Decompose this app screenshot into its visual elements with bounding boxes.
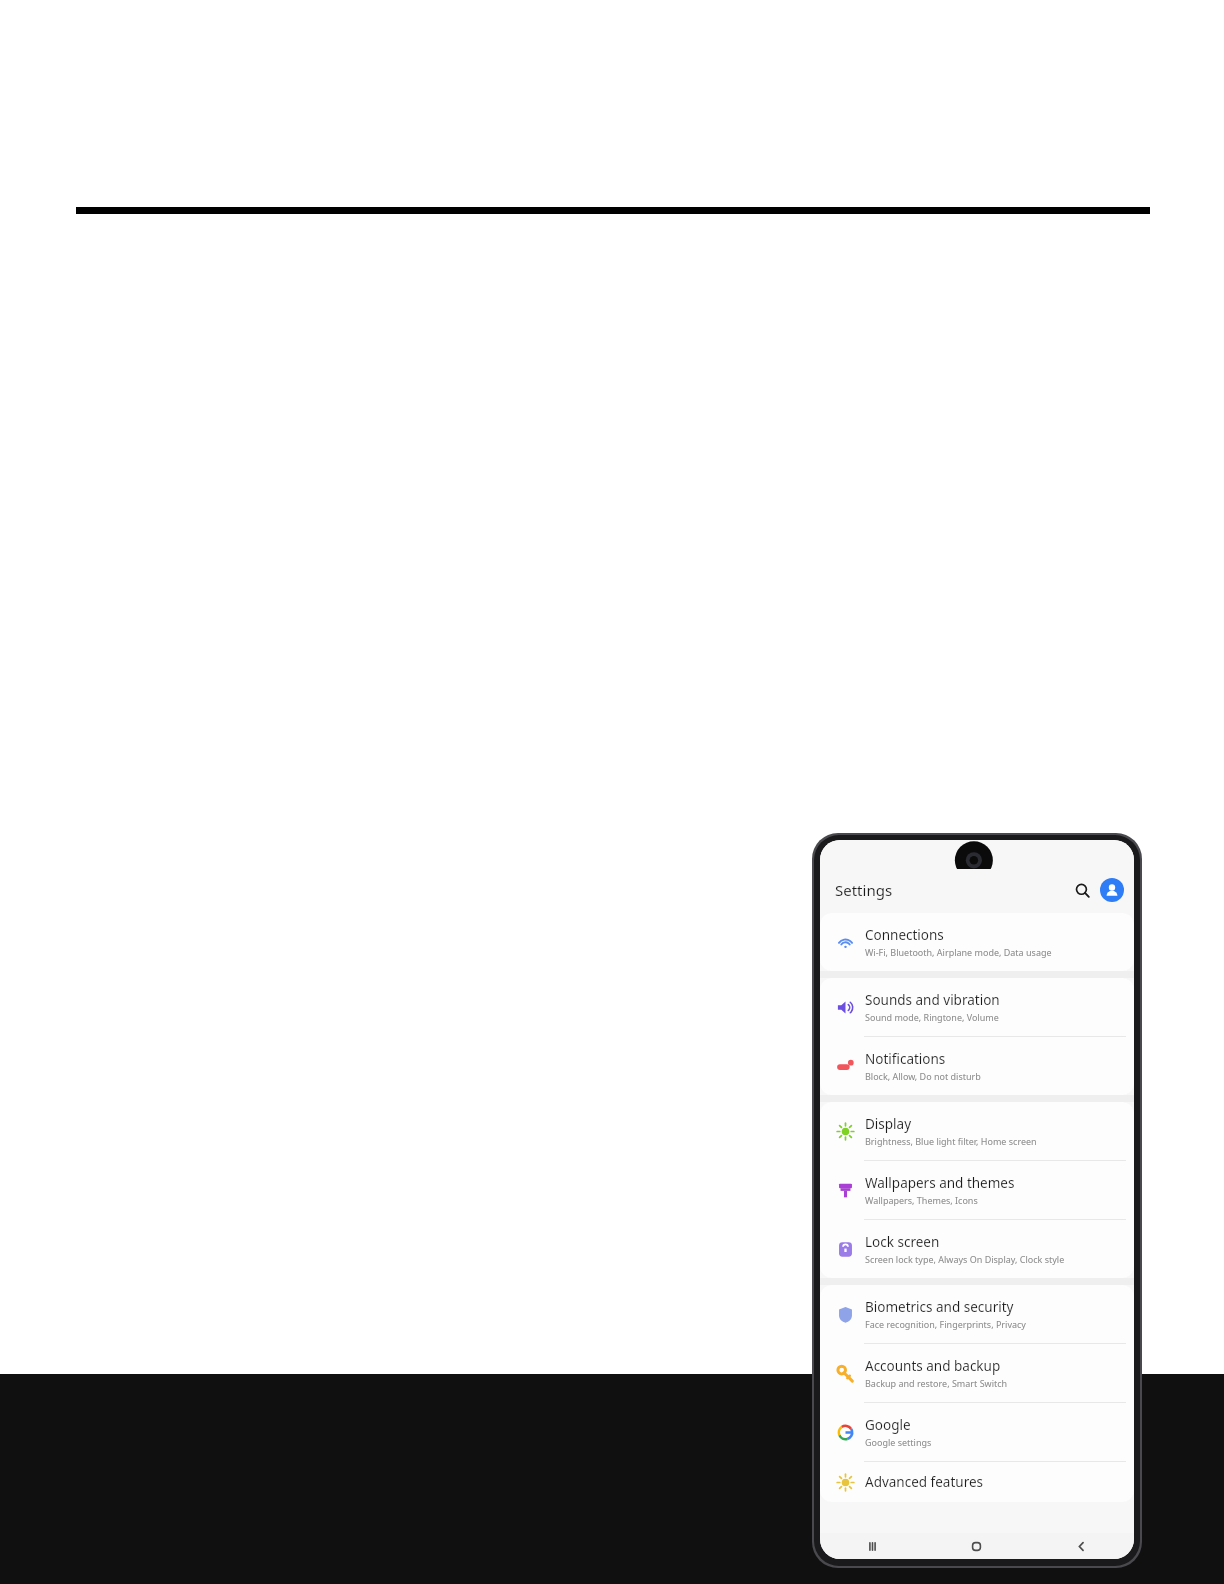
button[interactable]: Advanced features [820,1462,1134,1502]
staticText: Screen lock type, Always On Display, Clo… [865,1253,1065,1265]
staticText: Brightness, Blue light filter, Home scre… [865,1135,1037,1147]
staticText: Sounds and vibration [865,991,1000,1009]
button[interactable]: Back [1029,1533,1134,1559]
staticText: Wallpapers and themes [865,1174,1015,1192]
button[interactable]: Search [1067,875,1097,905]
button[interactable]: Display [820,1102,1134,1160]
staticText: Google settings [865,1436,932,1448]
button[interactable]: Lock screen [820,1220,1134,1278]
staticText: Sound mode, Ringtone, Volume [865,1011,999,1023]
staticText: Backup and restore, Smart Switch [865,1377,1008,1389]
button[interactable]: Accounts and backup [820,1344,1134,1402]
staticText: Display [865,1115,912,1133]
button[interactable]: Home [924,1533,1029,1559]
staticText: Settings [835,880,893,900]
staticText: Accounts and backup [865,1357,1001,1375]
staticText: Notifications [865,1050,946,1068]
staticText: Block, Allow, Do not disturb [865,1070,981,1082]
button[interactable]: Wallpapers and themes [820,1161,1134,1219]
staticText: Advanced features [865,1473,984,1491]
staticText: Connections [865,926,944,944]
button[interactable]: Account [1100,878,1124,902]
button[interactable]: Google [820,1403,1134,1461]
button[interactable]: Recents [820,1533,924,1559]
staticText: Wallpapers, Themes, Icons [865,1194,978,1206]
staticText: Biometrics and security [865,1298,1014,1316]
staticText: Wi-Fi, Bluetooth, Airplane mode, Data us… [865,946,1052,958]
button[interactable]: Notifications [820,1037,1134,1095]
button[interactable]: Connections [820,913,1134,971]
button[interactable]: Biometrics and security [820,1285,1134,1343]
staticText: Lock screen [865,1233,940,1251]
button[interactable]: Sounds and vibration [820,978,1134,1036]
staticText: Google [865,1416,911,1434]
staticText: Face recognition, Fingerprints, Privacy [865,1318,1026,1330]
